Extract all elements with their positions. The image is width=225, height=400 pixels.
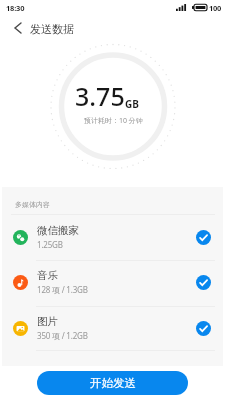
staticText: 图片 [37,315,58,328]
button[interactable]: Selected [196,321,211,336]
button[interactable]: Selected [196,230,211,245]
staticText: 1.25GB [37,239,63,250]
staticText: 350 项 / 1.2GB [37,330,88,341]
staticText: 3.75 [75,79,125,113]
staticText: 音乐 [37,269,58,282]
staticText: 发送数据 [30,22,74,36]
staticText: 预计耗时：10 分钟 [84,116,143,126]
button[interactable]: Selected [196,275,211,290]
staticText: 100 [209,3,221,13]
staticText: 128 项 / 1.3GB [37,284,88,295]
staticText: 微信搬家 [37,224,79,237]
button[interactable]: Back [6,16,30,40]
button[interactable]: 开始发送 [37,371,188,395]
button[interactable]: 图片 [0,306,225,351]
staticText: 18:30 [6,3,25,13]
staticText: GB [125,97,139,111]
button[interactable]: 微信搬家 [0,215,225,260]
button[interactable]: 音乐 [0,260,225,305]
staticText: 多媒体内容 [15,200,50,209]
staticText: 开始发送 [90,376,136,390]
